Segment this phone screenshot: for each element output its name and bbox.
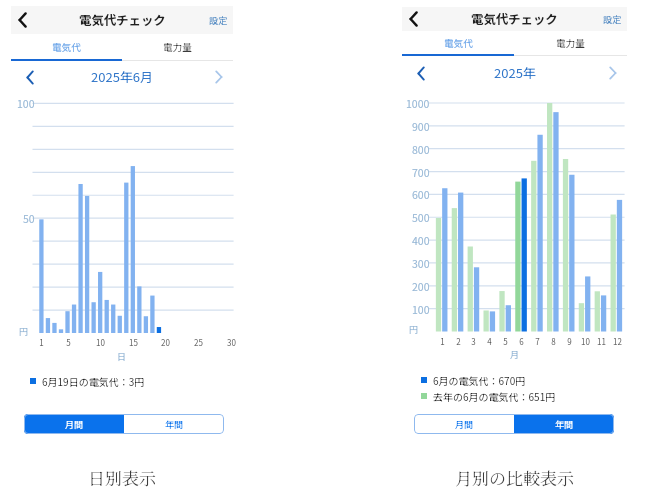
staticText: 1 xyxy=(440,336,445,348)
staticText: 12 xyxy=(613,336,622,348)
staticText: 月 xyxy=(510,348,520,361)
staticText: 円 xyxy=(19,325,29,337)
staticText: 4 xyxy=(487,336,492,348)
staticText: 7 xyxy=(535,336,540,348)
staticText: 3 xyxy=(471,336,476,348)
staticText: 円 xyxy=(409,323,419,335)
staticText: 月間 xyxy=(455,418,474,431)
staticText: 5 xyxy=(503,336,508,348)
staticText: 1 xyxy=(39,337,44,349)
staticText: 6月19日の電気代：3円 xyxy=(42,374,145,388)
button[interactable]: 電力量 xyxy=(514,36,627,50)
button[interactable]: 設定 xyxy=(600,11,625,27)
staticText: 設定 xyxy=(603,13,622,26)
button[interactable]: 年間 xyxy=(124,414,224,434)
staticText: 50 xyxy=(23,211,35,223)
staticText: 1000 xyxy=(406,96,430,108)
staticText: 設定 xyxy=(209,14,228,27)
staticText: 800 xyxy=(412,142,430,154)
staticText: 400 xyxy=(412,233,430,245)
staticText: 6月の電気代：670円 xyxy=(433,373,526,387)
staticText: 300 xyxy=(412,256,430,268)
staticText: 30 xyxy=(227,337,236,349)
staticText: 電力量 xyxy=(556,36,585,50)
staticText: 9 xyxy=(567,336,572,348)
staticText: 100 xyxy=(17,96,35,108)
staticText: 日 xyxy=(117,350,127,363)
staticText: 15 xyxy=(129,337,138,349)
staticText: 2 xyxy=(456,336,461,348)
button[interactable]: Previous period xyxy=(20,67,40,87)
staticText: 年間 xyxy=(165,418,184,431)
button[interactable]: Back xyxy=(11,9,33,31)
staticText: 8 xyxy=(551,336,556,348)
staticText: 6 xyxy=(519,336,524,348)
staticText: 電力量 xyxy=(163,40,192,54)
staticText: 11 xyxy=(597,336,606,348)
staticText: 100 xyxy=(412,302,430,314)
staticText: 700 xyxy=(412,165,430,177)
staticText: 電気代 xyxy=(52,40,81,54)
button[interactable]: 電気代 xyxy=(11,40,122,54)
button[interactable]: Next period xyxy=(603,63,623,83)
staticText: 電気代 xyxy=(444,36,473,50)
button[interactable]: 月間 xyxy=(414,414,514,434)
staticText: 電気代チェック xyxy=(79,11,166,29)
staticText: 20 xyxy=(161,337,170,349)
button[interactable]: 年間 xyxy=(514,414,614,434)
staticText: 2025年6月 xyxy=(91,67,154,86)
staticText: 900 xyxy=(412,119,430,131)
button[interactable]: Previous period xyxy=(411,63,431,83)
staticText: 25 xyxy=(194,337,203,349)
staticText: 600 xyxy=(412,187,430,199)
staticText: 2025年 xyxy=(494,63,536,82)
button[interactable]: Back xyxy=(402,8,424,30)
staticText: 月別の比較表示 xyxy=(455,465,574,489)
staticText: 日別表示 xyxy=(88,465,156,489)
staticText: 10 xyxy=(581,336,590,348)
button[interactable]: Next period xyxy=(209,67,229,87)
staticText: 10 xyxy=(96,337,105,349)
button[interactable]: 電気代 xyxy=(402,36,514,50)
button[interactable]: 月間 xyxy=(24,414,124,434)
staticText: 電気代チェック xyxy=(471,10,558,28)
staticText: 去年の6月の電気代：651円 xyxy=(433,389,556,403)
staticText: 200 xyxy=(412,279,430,291)
staticText: 月間 xyxy=(65,418,84,431)
staticText: 500 xyxy=(412,210,430,222)
staticText: 5 xyxy=(66,337,71,349)
staticText: 年間 xyxy=(555,418,574,431)
button[interactable]: 設定 xyxy=(206,12,231,28)
button[interactable]: 電力量 xyxy=(122,40,233,54)
